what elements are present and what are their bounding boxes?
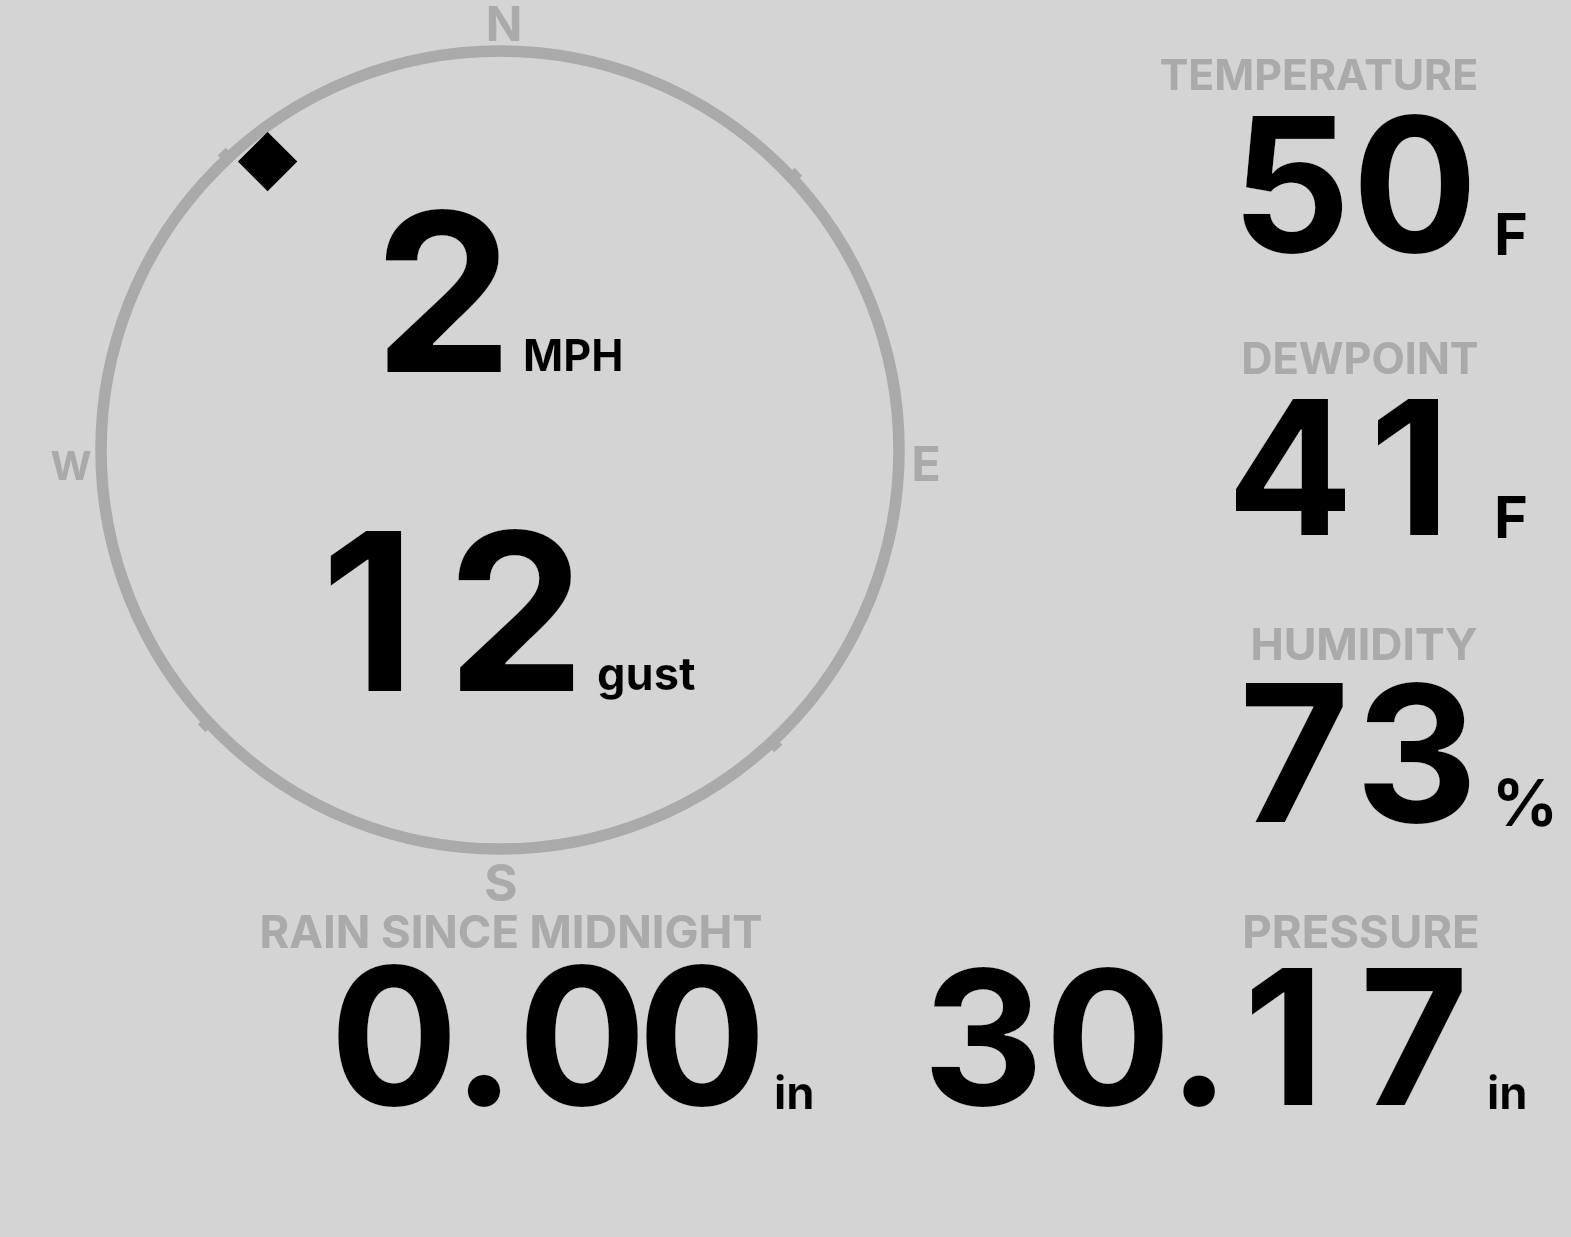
button[interactable]: Pressure 30.17 inches <box>880 900 1560 1130</box>
staticText: 2 <box>340 478 692 744</box>
staticText: W <box>0 442 421 490</box>
staticText: 1 <box>1260 354 1560 581</box>
staticText: F <box>1494 199 1529 269</box>
button[interactable]: Rain since midnight 0.00 inches <box>230 900 850 1130</box>
staticText: S <box>151 852 851 913</box>
staticText: . <box>331 920 637 1152</box>
staticText: 1 <box>1134 923 1434 1150</box>
staticText: 3 <box>1264 637 1569 867</box>
staticText: 0 <box>241 920 547 1152</box>
staticText: HUMIDITY <box>1014 617 1571 671</box>
button[interactable]: Dewpoint 41 degrees Fahrenheit <box>1140 325 1560 555</box>
staticText: TEMPERATURE <box>969 49 1571 101</box>
staticText: PRESSURE <box>1011 904 1571 959</box>
button[interactable]: Wind speed 2 miles per hour <box>330 190 700 390</box>
staticText: 7 <box>1264 923 1564 1150</box>
staticText: in <box>1487 1065 1528 1120</box>
staticText: N <box>154 0 854 52</box>
staticText: 7 <box>1142 637 1447 867</box>
staticText: % <box>1425 763 1571 842</box>
staticText: . <box>1049 923 1349 1150</box>
button[interactable]: Wind gust 12 miles per hour <box>300 510 720 710</box>
staticText: 5 <box>1142 71 1440 297</box>
staticText: 3 <box>833 923 1133 1150</box>
staticText: 1 <box>192 478 544 744</box>
staticText: E <box>576 434 1276 492</box>
staticText: 4 <box>1140 354 1440 581</box>
staticText: 2 <box>267 158 620 425</box>
staticText: RAIN SINCE MIDNIGHT <box>0 904 1061 959</box>
staticText: 0 <box>549 920 855 1152</box>
button[interactable]: Temperature 50 degrees Fahrenheit <box>1140 40 1560 270</box>
staticText: in <box>774 1065 815 1120</box>
staticText: gust <box>597 646 696 701</box>
staticText: 0 <box>429 920 735 1152</box>
button[interactable]: Wind direction compass <box>88 38 912 862</box>
staticText: MPH <box>523 329 624 381</box>
staticText: DEWPOINT <box>1010 332 1571 384</box>
staticText: 0 <box>958 923 1258 1150</box>
button[interactable]: Humidity 73 percent <box>1140 610 1560 840</box>
staticText: 0 <box>1266 71 1564 297</box>
staticText: F <box>1494 482 1529 552</box>
